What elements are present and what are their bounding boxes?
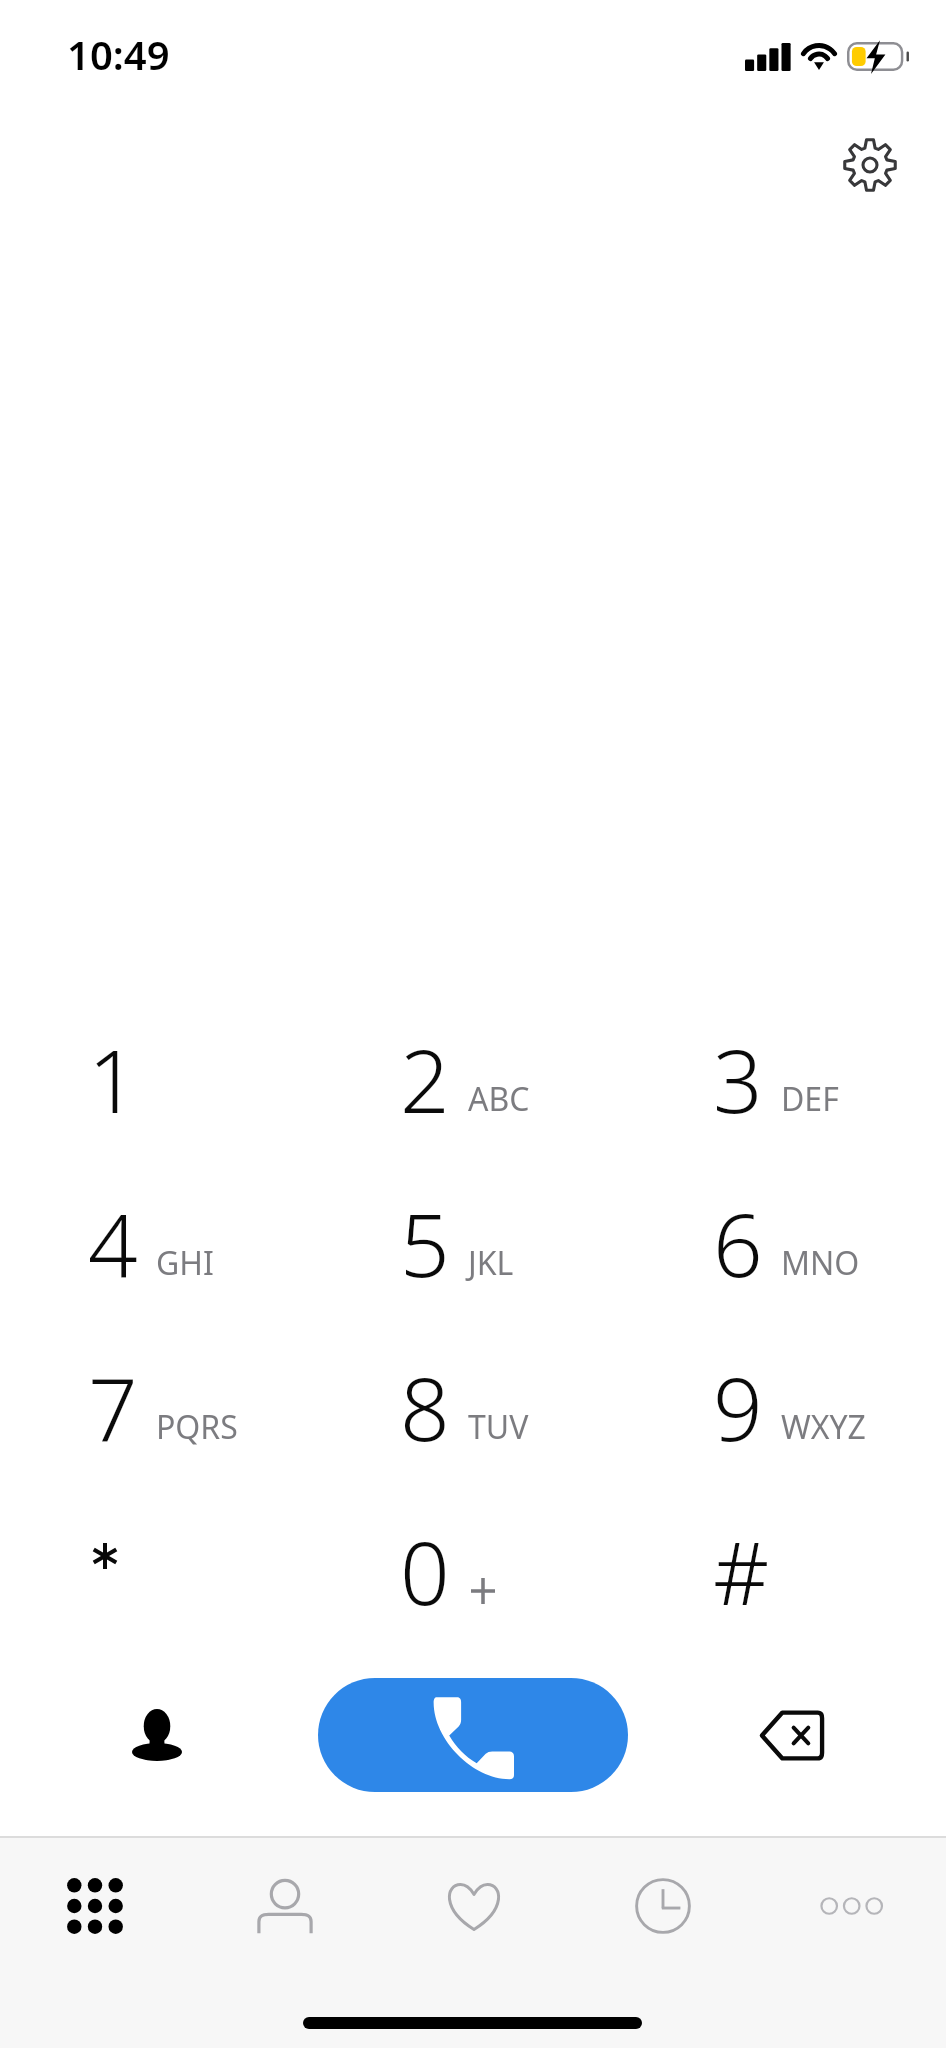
- staticText: GHI: [156, 1241, 214, 1285]
- button[interactable]: Add contact: [100, 1678, 214, 1792]
- staticText: 1: [88, 1020, 138, 1138]
- button[interactable]: Keypad: [0, 1838, 190, 1974]
- staticText: 10:49: [67, 27, 170, 81]
- staticText: 9: [713, 1348, 763, 1466]
- button[interactable]: Contacts: [190, 1838, 379, 1974]
- button[interactable]: 4 GHI: [28, 1154, 318, 1318]
- staticText: ABC: [468, 1077, 530, 1121]
- staticText: 5: [400, 1184, 450, 1302]
- button[interactable]: 9 WXYZ: [653, 1318, 943, 1482]
- button[interactable]: Recents: [568, 1838, 757, 1974]
- staticText: 7: [88, 1348, 138, 1466]
- button[interactable]: 3 DEF: [653, 990, 943, 1154]
- button[interactable]: Call: [318, 1678, 628, 1792]
- button[interactable]: Settings: [822, 122, 918, 208]
- staticText: 0: [400, 1512, 450, 1630]
- button[interactable]: Backspace: [735, 1678, 849, 1792]
- staticText: MNO: [781, 1241, 860, 1285]
- staticText: #: [713, 1512, 770, 1630]
- staticText: 2: [400, 1020, 450, 1138]
- staticText: JKL: [468, 1241, 514, 1285]
- button[interactable]: Favorites: [379, 1838, 568, 1974]
- staticText: WXYZ: [781, 1405, 866, 1449]
- staticText: DEF: [781, 1077, 839, 1121]
- button[interactable]: 2 ABC: [340, 990, 630, 1154]
- staticText: 8: [400, 1348, 450, 1466]
- staticText: TUV: [468, 1405, 529, 1449]
- staticText: 6: [713, 1184, 763, 1302]
- button[interactable]: 6 MNO: [653, 1154, 943, 1318]
- button[interactable]: 0 +: [340, 1482, 630, 1646]
- button[interactable]: 7 PQRS: [28, 1318, 318, 1482]
- staticText: 4: [88, 1184, 138, 1302]
- button[interactable]: *: [28, 1482, 318, 1646]
- button[interactable]: 5 JKL: [340, 1154, 630, 1318]
- button[interactable]: #: [653, 1482, 943, 1646]
- button[interactable]: More: [757, 1838, 946, 1974]
- staticText: PQRS: [156, 1405, 238, 1449]
- button[interactable]: 1: [28, 990, 318, 1154]
- button[interactable]: 8 TUV: [340, 1318, 630, 1482]
- staticText: 3: [713, 1020, 763, 1138]
